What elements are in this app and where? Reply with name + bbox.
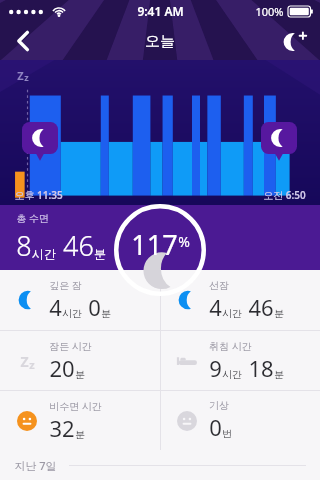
staticText: 기상 <box>209 399 229 412</box>
staticText: z <box>24 71 29 83</box>
staticText: 시간 <box>222 307 242 320</box>
staticText: 비수면 시간 <box>49 399 102 413</box>
staticText: 오후 11:35 <box>14 188 63 202</box>
button[interactable]: Z <box>0 331 160 390</box>
staticText: 분 <box>274 307 284 320</box>
staticText: 100% <box>255 4 284 19</box>
staticText: 시간 <box>32 246 56 261</box>
button[interactable]: 기상 <box>160 391 320 450</box>
staticText: 선잠 <box>209 279 229 292</box>
staticText: 20 <box>49 353 75 383</box>
staticText: 분 <box>94 246 106 261</box>
staticText: 9 <box>209 353 222 383</box>
staticText: 8 <box>16 227 32 264</box>
staticText: % <box>178 232 190 251</box>
button[interactable]: Add sleep record <box>270 22 320 60</box>
staticText: 0 <box>209 412 222 442</box>
button[interactable]: Back <box>0 22 46 60</box>
staticText: Z <box>20 352 29 371</box>
button[interactable]: 취침 시간 <box>160 331 320 390</box>
button[interactable]: 선잠 <box>160 270 320 330</box>
staticText: 32 <box>49 413 75 443</box>
staticText: 지난 7일 <box>14 458 57 473</box>
staticText: 시간 <box>62 307 82 320</box>
staticText: 시간 <box>222 368 242 381</box>
staticText: 0 <box>88 292 101 322</box>
staticText: 번 <box>222 427 232 440</box>
staticText: 오늘 <box>145 32 175 51</box>
button[interactable]: 비수면 시간 <box>0 391 160 450</box>
staticText: Z <box>17 68 24 83</box>
staticText: 취침 시간 <box>209 339 252 353</box>
staticText: 분 <box>274 368 284 381</box>
button[interactable]: 깊은 잠 <box>0 270 160 330</box>
staticText: 18 <box>248 353 274 383</box>
staticText: 오전 6:50 <box>263 188 306 202</box>
staticText: 4 <box>209 292 222 322</box>
staticText: 46 <box>63 227 94 264</box>
staticText: 깊은 잠 <box>49 278 82 292</box>
staticText: 46 <box>248 292 274 322</box>
staticText: 9:41 AM <box>137 3 184 19</box>
staticText: 분 <box>101 307 111 320</box>
staticText: 4 <box>49 292 62 322</box>
staticText: 분 <box>75 428 85 441</box>
staticText: 117 <box>131 226 178 263</box>
staticText: 총 수면 <box>16 211 49 225</box>
staticText: 잠든 시간 <box>49 339 92 353</box>
staticText: 분 <box>75 368 85 381</box>
staticText: z <box>29 357 35 372</box>
